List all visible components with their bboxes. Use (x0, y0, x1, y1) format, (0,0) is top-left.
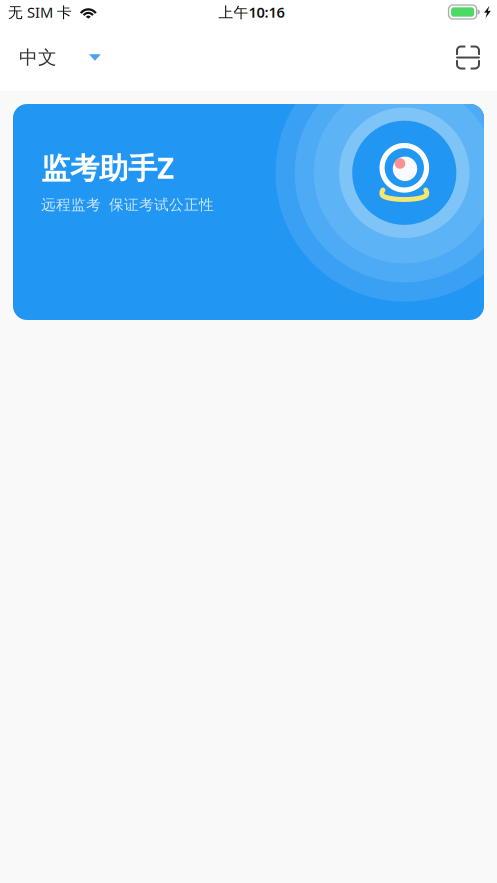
button[interactable]: Scan QR code (438, 24, 497, 91)
staticText: 中文 (19, 46, 57, 69)
staticText: 无 SIM 卡 (8, 2, 72, 22)
staticText: 远程监考 保证考试公正性 (41, 196, 214, 214)
staticText: 上午10:16 (218, 2, 284, 22)
staticText: 监考助手Z (41, 148, 174, 187)
button[interactable]: 中文 (0, 24, 113, 91)
